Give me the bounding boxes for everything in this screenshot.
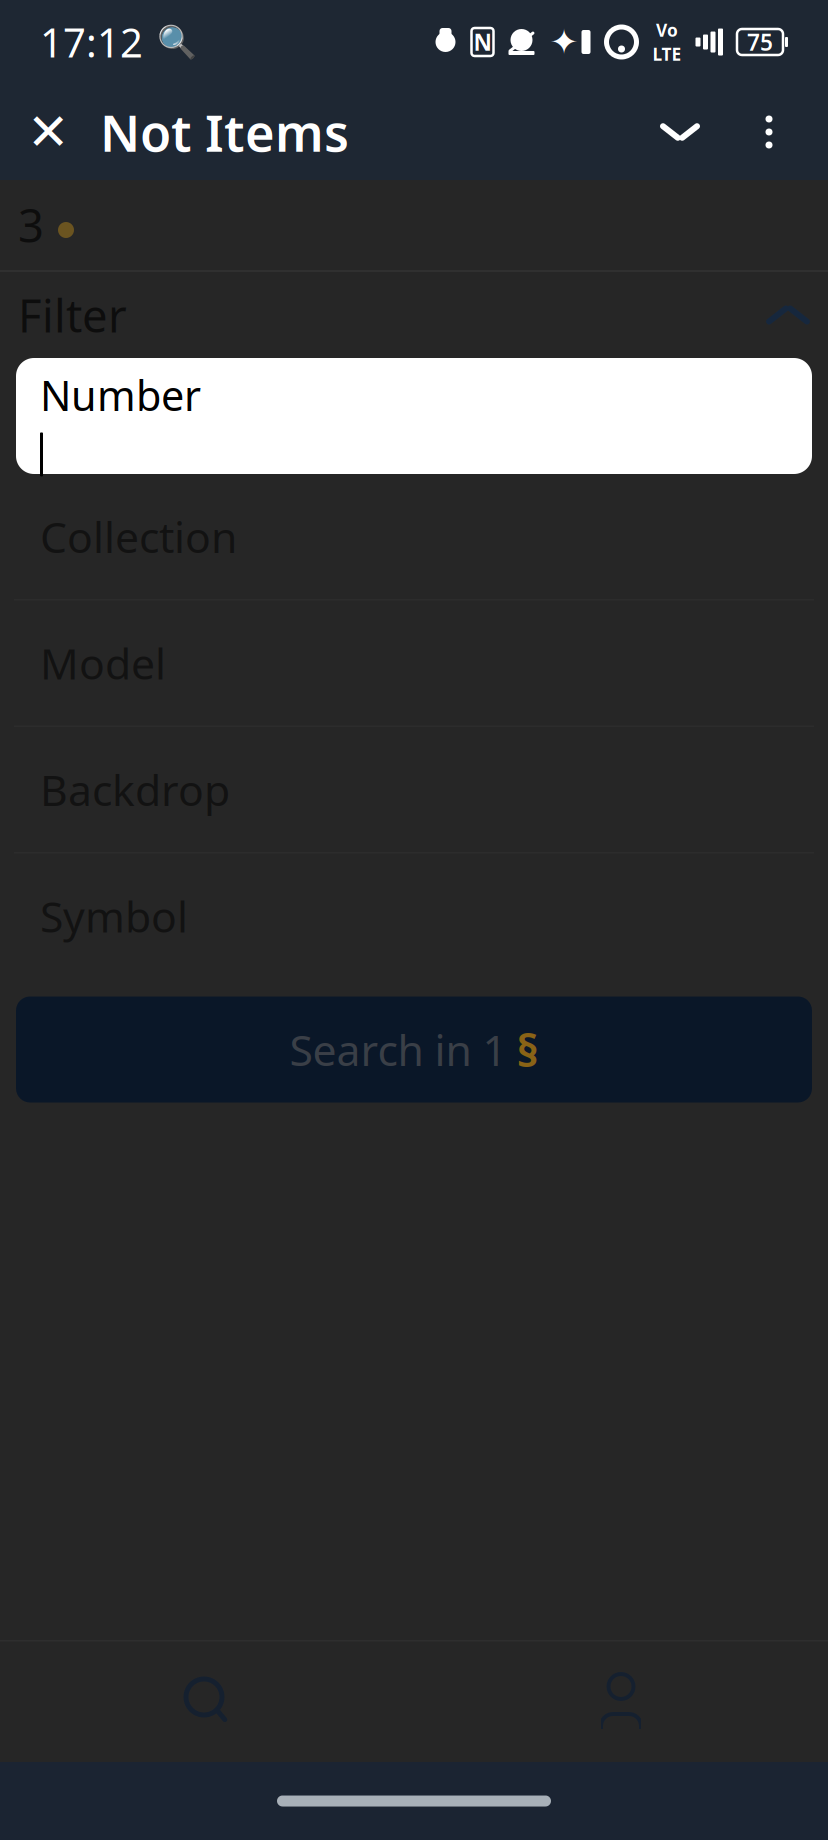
staticText: § [516, 1019, 538, 1080]
staticText: 17:12 [40, 15, 143, 68]
staticText: 75 [747, 27, 773, 57]
staticText: 🔍 [157, 24, 197, 60]
staticText: Filter [18, 285, 127, 345]
staticText: Vo [656, 18, 678, 41]
staticText: Symbol [40, 888, 188, 944]
staticText: Model [40, 635, 166, 691]
staticText: Not Items [100, 98, 349, 166]
staticText: 3 [18, 195, 44, 255]
staticText: Search in 1 [289, 1021, 506, 1078]
button[interactable]: Filter [0, 272, 828, 358]
staticText: LTE [652, 42, 681, 65]
staticText: ✕ [27, 103, 69, 161]
staticText: Collection [40, 508, 237, 565]
button[interactable]: Search in 1 [16, 996, 812, 1102]
staticText: Number [40, 368, 201, 422]
staticText: N [473, 27, 491, 57]
button[interactable]: Close [0, 84, 96, 180]
button[interactable]: Expand [634, 84, 726, 180]
staticText: ✦ [549, 22, 578, 62]
button[interactable]: More options [726, 84, 812, 180]
staticText: Backdrop [40, 761, 230, 818]
